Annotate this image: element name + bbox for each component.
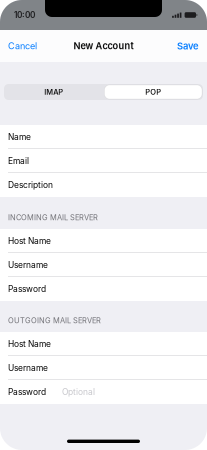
button[interactable]: Save bbox=[167, 30, 207, 62]
button[interactable]: Email bbox=[0, 149, 207, 173]
staticText: 10:00 bbox=[14, 10, 35, 20]
staticText: Description bbox=[8, 180, 53, 190]
staticText: Name bbox=[8, 132, 31, 142]
staticText: IMAP bbox=[44, 87, 63, 96]
staticText: Password bbox=[8, 284, 46, 294]
staticText: Email bbox=[8, 156, 29, 166]
staticText: POP bbox=[145, 87, 161, 96]
button[interactable]: Cancel bbox=[0, 30, 47, 62]
staticText: Username bbox=[8, 260, 48, 270]
button[interactable]: Name bbox=[0, 125, 207, 149]
button[interactable]: IMAP bbox=[4, 84, 103, 100]
staticText: INCOMING MAIL SERVER bbox=[8, 213, 98, 222]
button[interactable]: Password bbox=[0, 380, 207, 404]
staticText: New Account bbox=[73, 40, 133, 51]
button[interactable]: Description bbox=[0, 173, 207, 197]
staticText: Optional bbox=[62, 387, 95, 397]
staticText: Save bbox=[177, 40, 199, 52]
button[interactable]: POP bbox=[103, 84, 203, 100]
button[interactable]: Password bbox=[0, 277, 207, 301]
staticText: Host Name bbox=[8, 236, 51, 246]
button[interactable]: Host Name bbox=[0, 332, 207, 356]
button[interactable]: Username bbox=[0, 356, 207, 380]
button[interactable]: Host Name bbox=[0, 229, 207, 253]
staticText: Cancel bbox=[8, 40, 37, 51]
staticText: OUTGOING MAIL SERVER bbox=[8, 316, 101, 325]
button[interactable]: Username bbox=[0, 253, 207, 277]
staticText: Host Name bbox=[8, 339, 51, 349]
staticText: Username bbox=[8, 363, 48, 373]
staticText: Password bbox=[8, 387, 46, 397]
